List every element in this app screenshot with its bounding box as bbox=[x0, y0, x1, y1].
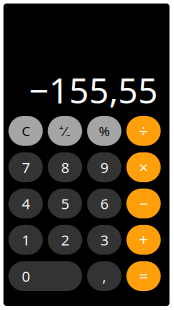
button[interactable]: 5 bbox=[48, 189, 82, 218]
staticText: 2 bbox=[61, 230, 69, 250]
button[interactable]: 0 bbox=[8, 261, 82, 291]
staticText: −155,55 bbox=[29, 67, 158, 113]
button[interactable]: = bbox=[126, 261, 161, 291]
staticText: − bbox=[139, 193, 148, 214]
button[interactable]: + bbox=[126, 225, 161, 255]
staticText: × bbox=[139, 157, 148, 178]
button[interactable]: 3 bbox=[87, 225, 121, 255]
button[interactable]: , bbox=[87, 261, 121, 291]
staticText: , bbox=[102, 266, 106, 286]
button[interactable]: − bbox=[126, 189, 161, 218]
button[interactable]: 2 bbox=[48, 225, 82, 255]
staticText: 0 bbox=[22, 266, 30, 286]
button[interactable]: ⁺⁄₋ bbox=[48, 116, 82, 146]
button[interactable]: 9 bbox=[87, 152, 121, 182]
staticText: = bbox=[139, 265, 148, 287]
staticText: 5 bbox=[61, 194, 69, 213]
button[interactable]: 4 bbox=[8, 189, 43, 218]
staticText: 9 bbox=[100, 157, 108, 177]
button[interactable]: ÷ bbox=[126, 116, 161, 146]
button[interactable]: % bbox=[87, 116, 121, 146]
staticText: 1 bbox=[22, 230, 30, 250]
button[interactable]: 6 bbox=[87, 189, 121, 218]
staticText: % bbox=[99, 122, 110, 140]
button[interactable]: × bbox=[126, 152, 161, 182]
staticText: + bbox=[139, 229, 148, 250]
staticText: 8 bbox=[61, 157, 69, 177]
button[interactable]: 7 bbox=[8, 152, 43, 182]
button[interactable]: C bbox=[8, 116, 43, 146]
staticText: 7 bbox=[22, 157, 30, 177]
staticText: 3 bbox=[100, 230, 108, 250]
staticText: C bbox=[22, 122, 30, 140]
staticText: ÷ bbox=[139, 120, 148, 141]
staticText: 4 bbox=[22, 194, 30, 213]
staticText: ⁺⁄₋ bbox=[59, 122, 71, 140]
button[interactable]: 1 bbox=[8, 225, 43, 255]
staticText: 6 bbox=[100, 194, 108, 213]
button[interactable]: 8 bbox=[48, 152, 82, 182]
